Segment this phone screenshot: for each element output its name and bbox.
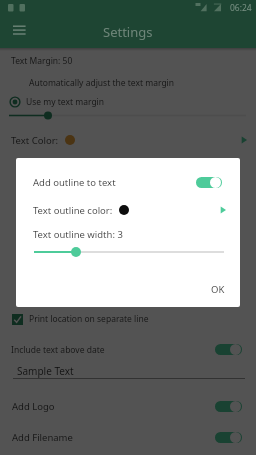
button[interactable]: Automatically adjust the text margin [29, 77, 175, 89]
button[interactable]: Add Logo [0, 398, 256, 414]
button[interactable]: Print location on separate line [0, 311, 256, 327]
button[interactable]: Open navigation menu [7, 20, 31, 44]
staticText: OK [211, 283, 225, 296]
staticText: Text outline color: [33, 204, 113, 217]
button[interactable]: Use my text margin [9, 95, 105, 109]
staticText: 06:24 [230, 2, 252, 14]
staticText: Settings [103, 23, 153, 41]
staticText: Use my text margin [26, 96, 105, 108]
staticText: Print location on separate line [29, 313, 149, 325]
button[interactable]: Add outline to text [16, 171, 240, 193]
button[interactable]: Add Filename [0, 429, 256, 445]
staticText: Include text above date [11, 344, 105, 356]
button[interactable]: Text outline color: [16, 199, 240, 221]
staticText: Text Margin: 50 [11, 55, 73, 67]
button[interactable]: Include text above date [215, 344, 242, 355]
staticText: Add Logo [12, 400, 55, 413]
button[interactable]: OK [204, 277, 232, 302]
button[interactable] [16, 246, 240, 258]
button[interactable]: Add Logo [215, 401, 242, 412]
staticText: Add outline to text [33, 176, 116, 189]
button[interactable]: Include text above date [0, 341, 256, 358]
staticText: Sample Text [17, 364, 74, 378]
button[interactable]: Add Filename [215, 432, 242, 443]
staticText: Text Color: [11, 134, 59, 147]
staticText: Automatically adjust the text margin [29, 77, 175, 89]
staticText: Text outline width: 3 [33, 228, 123, 241]
button[interactable]: Text Color: [0, 132, 256, 148]
button[interactable] [0, 110, 256, 121]
staticText: Add Filename [12, 431, 73, 444]
